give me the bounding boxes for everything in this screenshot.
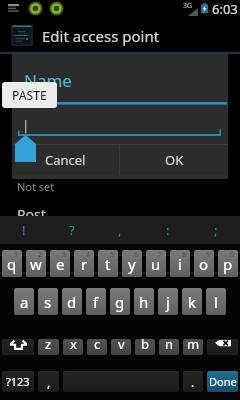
- staticText: t: [105, 254, 111, 274]
- staticText: Not set: [17, 179, 55, 194]
- button[interactable]: o: [194, 250, 214, 277]
- staticText: PASTE: [12, 87, 47, 103]
- button[interactable]: w: [26, 250, 46, 277]
- staticText: ;: [214, 221, 218, 239]
- button[interactable]: Done: [207, 371, 238, 392]
- button[interactable]: v: [111, 339, 131, 355]
- button[interactable]: OK: [120, 145, 228, 175]
- button[interactable]: l: [206, 288, 226, 315]
- button[interactable]: s: [38, 288, 58, 315]
- button[interactable]: t: [98, 250, 118, 277]
- staticText: Cancel: [45, 151, 86, 169]
- staticText: r: [81, 254, 88, 274]
- staticText: l: [214, 292, 218, 312]
- button[interactable]: ;: [192, 216, 240, 244]
- button[interactable]: n: [159, 339, 179, 355]
- staticText: s: [44, 292, 52, 312]
- staticText: x: [70, 339, 77, 351]
- button[interactable]: q: [2, 250, 22, 277]
- staticText: p: [223, 254, 233, 274]
- button[interactable]: e: [50, 250, 70, 277]
- button[interactable]: Delete: [207, 339, 238, 355]
- staticText: e: [56, 254, 65, 274]
- staticText: Edit access point: [42, 26, 160, 46]
- button[interactable]: ,: [96, 216, 144, 244]
- staticText: u: [151, 254, 161, 274]
- staticText: o: [199, 254, 209, 274]
- staticText: :: [166, 221, 170, 239]
- button[interactable]: z: [38, 339, 59, 355]
- staticText: 7: [158, 250, 163, 260]
- staticText: ,: [118, 221, 122, 239]
- button[interactable]: a: [14, 288, 34, 315]
- staticText: Done: [209, 374, 237, 389]
- staticText: y: [128, 254, 136, 274]
- button[interactable]: d: [62, 288, 82, 315]
- button[interactable]: k: [182, 288, 202, 315]
- button[interactable]: Shift: [2, 339, 34, 355]
- staticText: n: [165, 339, 174, 351]
- staticText: 6: [134, 250, 139, 260]
- staticText: 0: [230, 250, 235, 260]
- staticText: z: [45, 339, 52, 351]
- staticText: ?: [69, 221, 75, 239]
- staticText: 5: [110, 250, 115, 260]
- button[interactable]: ?123: [2, 371, 34, 392]
- staticText: a: [20, 292, 29, 312]
- button[interactable]: j: [158, 288, 178, 315]
- staticText: !: [22, 221, 26, 239]
- button[interactable]: .: [183, 371, 203, 392]
- staticText: g: [115, 292, 125, 312]
- button[interactable]: !: [0, 216, 48, 244]
- staticText: c: [94, 339, 101, 351]
- staticText: 3: [62, 250, 67, 260]
- staticText: k: [188, 292, 197, 312]
- staticText: v: [118, 339, 125, 351]
- button[interactable]: ?: [48, 216, 96, 244]
- staticText: 4: [86, 250, 91, 260]
- button[interactable]: :: [144, 216, 192, 244]
- button[interactable]: PASTE: [2, 82, 57, 108]
- staticText: j: [166, 292, 170, 312]
- staticText: w: [30, 254, 42, 274]
- staticText: d: [67, 292, 77, 312]
- staticText: i: [178, 254, 182, 274]
- button[interactable]: ,: [38, 371, 59, 392]
- staticText: f: [93, 292, 99, 312]
- button[interactable]: y: [122, 250, 142, 277]
- staticText: ?123: [6, 374, 30, 389]
- button[interactable]: h: [134, 288, 154, 315]
- staticText: Name: [24, 69, 72, 92]
- staticText: Post: [17, 205, 46, 224]
- staticText: ,: [47, 374, 51, 390]
- button[interactable]: x: [63, 339, 83, 355]
- button[interactable]: b: [135, 339, 155, 355]
- staticText: 9: [206, 250, 211, 260]
- button[interactable]: p: [218, 250, 238, 277]
- button[interactable]: i: [170, 250, 190, 277]
- button[interactable]: g: [110, 288, 130, 315]
- staticText: h: [139, 292, 149, 312]
- staticText: OK: [165, 151, 184, 169]
- staticText: b: [141, 339, 149, 351]
- button[interactable]: f: [86, 288, 106, 315]
- staticText: .: [191, 374, 195, 390]
- staticText: 8: [182, 250, 187, 260]
- button[interactable]: m: [183, 339, 203, 355]
- button[interactable]: Cancel: [12, 145, 119, 175]
- staticText: q: [7, 254, 17, 274]
- button[interactable]: c: [87, 339, 107, 355]
- staticText: 6:03: [212, 0, 238, 17]
- staticText: 1: [14, 250, 19, 260]
- staticText: 3G: [183, 1, 193, 11]
- button[interactable]: r: [74, 250, 94, 277]
- button[interactable]: u: [146, 250, 166, 277]
- staticText: 2: [38, 250, 43, 260]
- staticText: m: [187, 339, 200, 351]
